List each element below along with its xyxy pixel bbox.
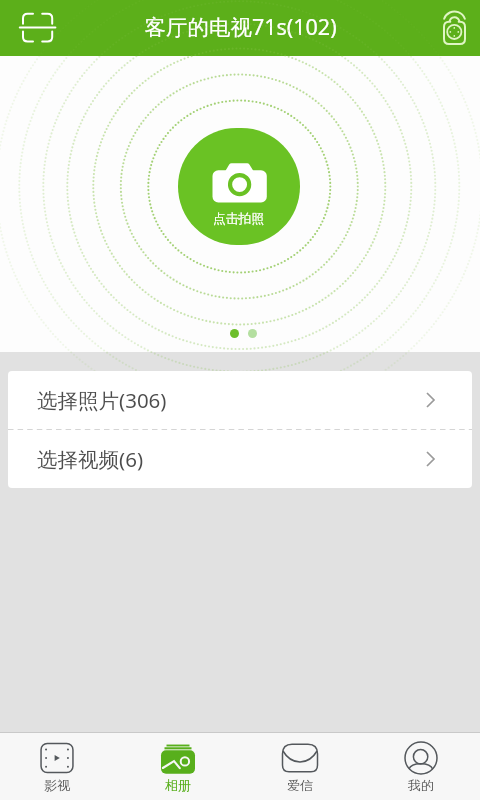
button[interactable]: 选择照片(306) [8, 371, 472, 429]
button[interactable]: 选择视频(6) [8, 430, 472, 488]
staticText: 选择照片(306) [37, 386, 167, 414]
button[interactable]: Remote control [426, 4, 474, 52]
button[interactable]: 点击拍照 [178, 128, 300, 245]
staticText: 点击拍照 [213, 211, 265, 227]
button[interactable]: 影视 [0, 733, 114, 800]
staticText: 我的 [408, 777, 434, 793]
button[interactable]: 我的 [362, 733, 480, 800]
staticText: 选择视频(6) [37, 445, 144, 473]
staticText: 影视 [44, 777, 70, 793]
staticText: 客厅的电视71s(102) [144, 12, 337, 41]
button[interactable]: Scan QR code [13, 4, 61, 52]
button[interactable]: 相册 [114, 733, 242, 800]
staticText: 相册 [165, 777, 191, 793]
staticText: 爱信 [287, 777, 313, 793]
button[interactable]: 爱信 [242, 733, 358, 800]
